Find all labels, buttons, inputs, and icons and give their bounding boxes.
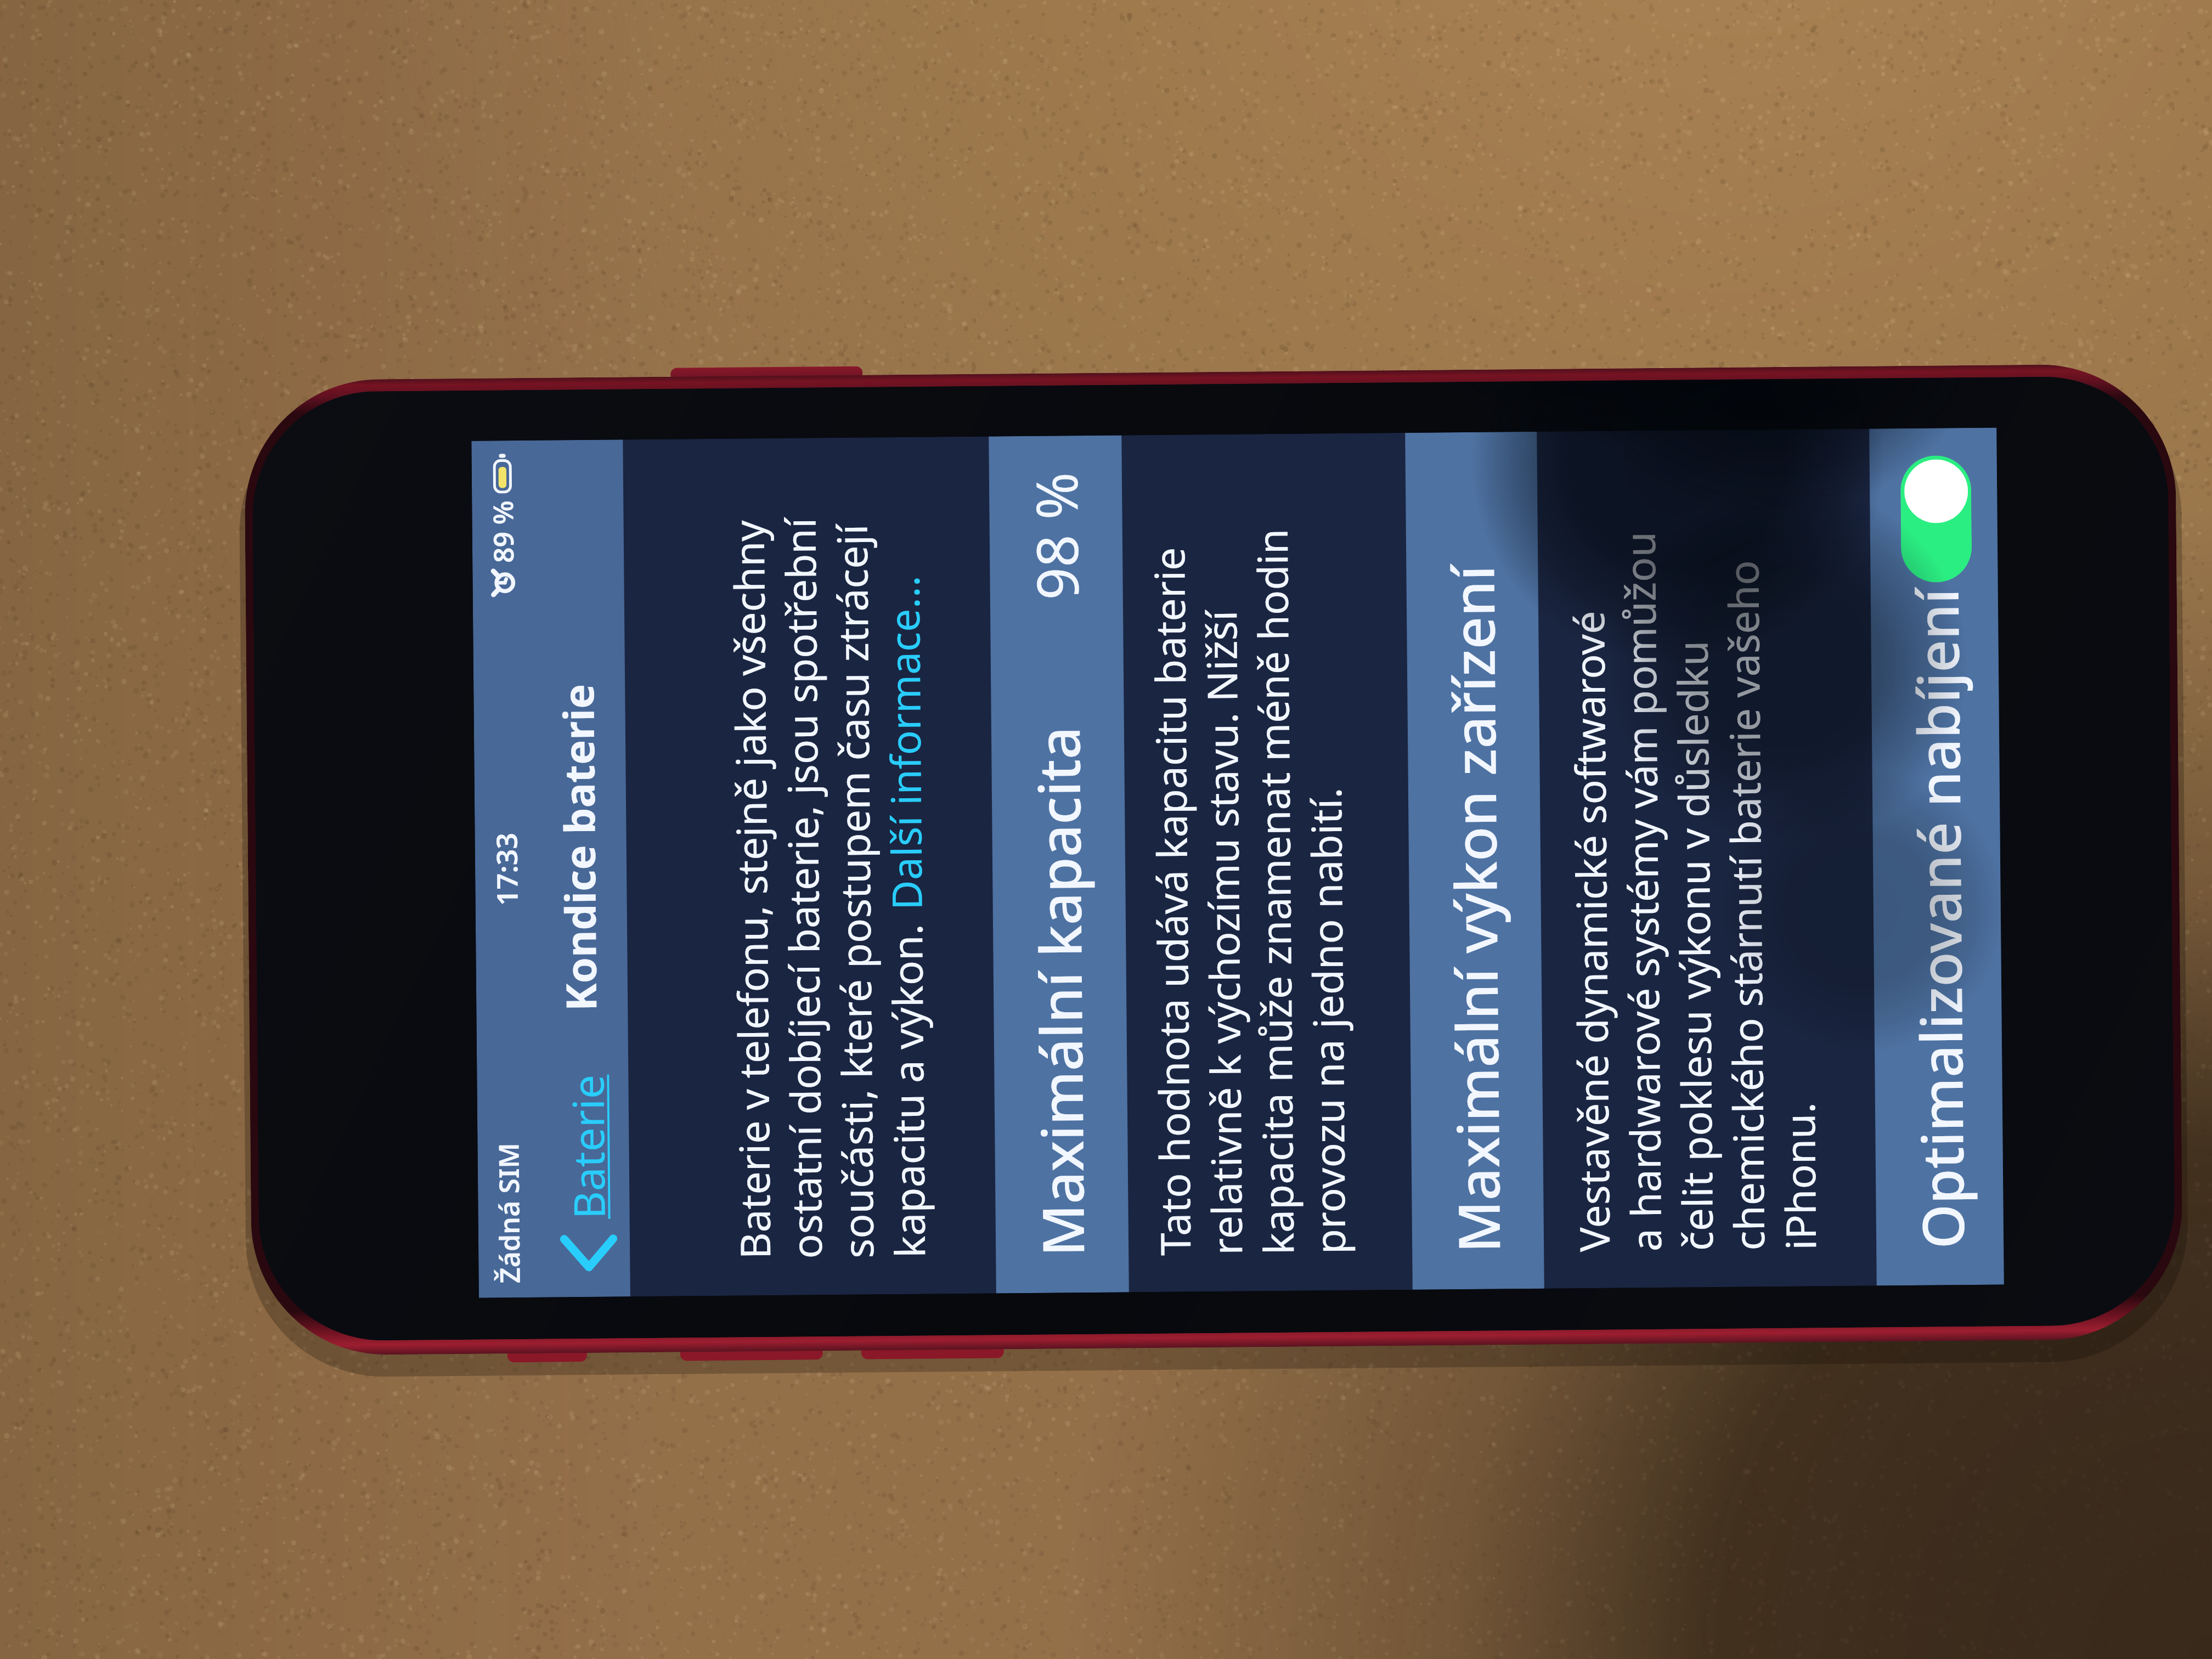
staticText: Optimalizované nabíjení [1897, 588, 1981, 1249]
staticText: 98 % [1016, 472, 1095, 600]
button[interactable]: Optimalizované nabíjení, zapnuto [1900, 455, 1972, 583]
staticText: Baterie [558, 1074, 618, 1219]
staticText: Tato hodnota udává kapacitu baterie rela… [1140, 528, 1357, 1256]
staticText: 17:33 [486, 832, 526, 906]
button[interactable]: Maximální výkon zařízení [1405, 432, 1544, 1290]
staticText: 89 % [484, 500, 522, 563]
staticText: Žádná SIM [490, 1143, 528, 1283]
button[interactable]: Maximální kapacita [989, 435, 1129, 1293]
staticText: Maximální výkon zařízení [1433, 565, 1517, 1253]
staticText: Maximální kapacita [1019, 726, 1101, 1257]
staticText: Vestavěné dynamické softwarové a hardwar… [1560, 530, 1828, 1252]
staticText: Kondice baterie [549, 683, 609, 1011]
button[interactable]: Další informace... [875, 575, 934, 910]
staticText: Baterie v telefonu, stejně jako všechny … [720, 517, 937, 1260]
button[interactable]: Baterie [558, 1074, 618, 1272]
button[interactable]: Optimalizované nabíjení [1869, 428, 2004, 1286]
